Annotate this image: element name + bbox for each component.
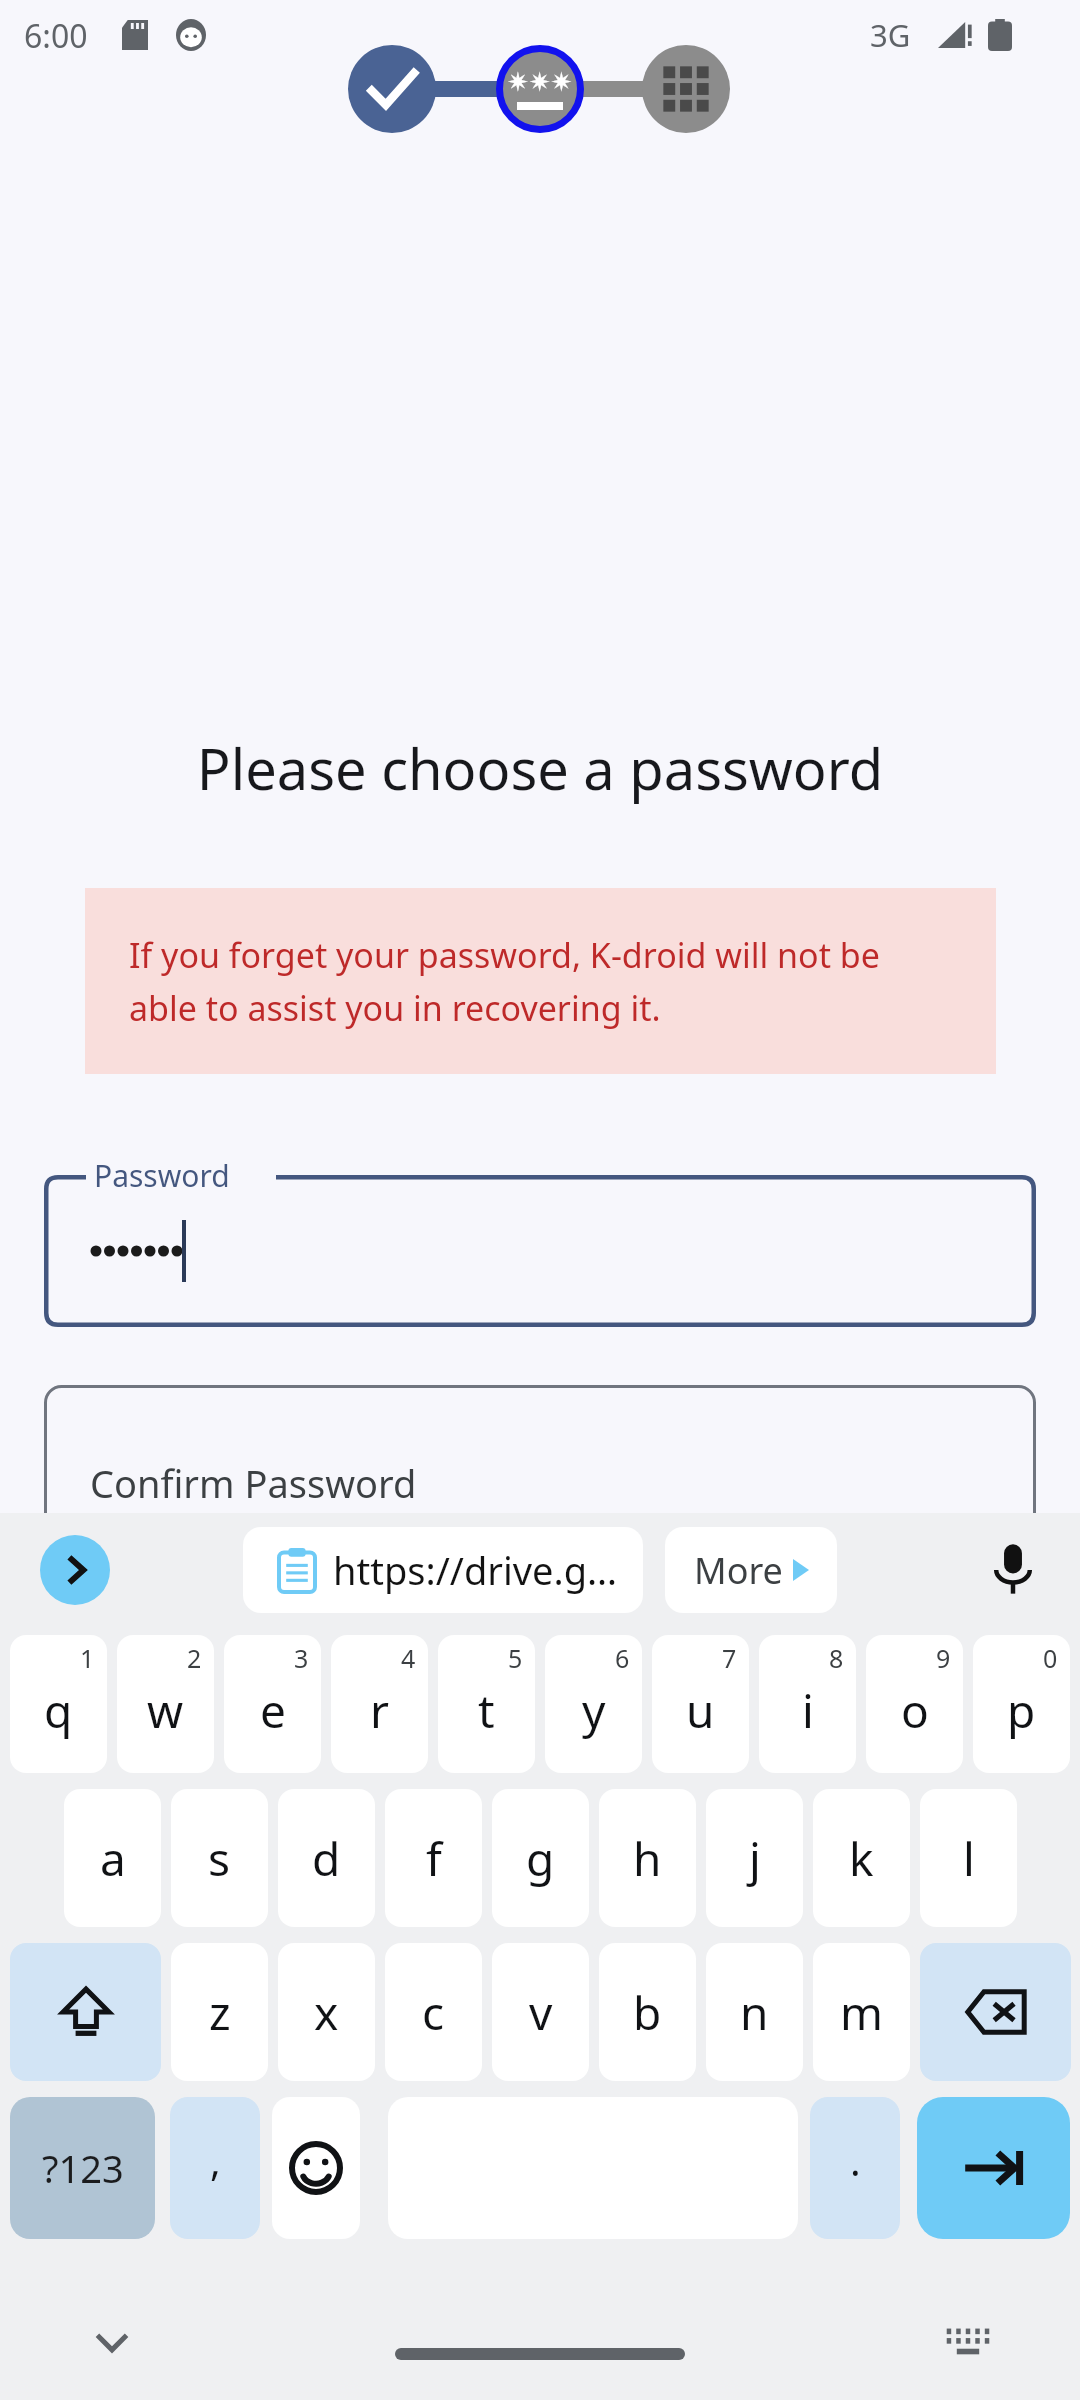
button[interactable]: Emoji [272, 2097, 360, 2239]
button[interactable]: c [385, 1943, 482, 2081]
staticText: 3G [870, 14, 911, 56]
button[interactable]: Hide keyboard [84, 2314, 140, 2370]
staticText: z [209, 1981, 231, 2044]
staticText: q [44, 1679, 73, 1742]
button[interactable]: f [385, 1789, 482, 1927]
button[interactable]: s [171, 1789, 268, 1927]
staticText: Confirm Password [90, 1457, 417, 1509]
button[interactable]: 1 [10, 1635, 107, 1773]
button[interactable]: 4 [331, 1635, 428, 1773]
button[interactable]: . [810, 2097, 900, 2239]
button[interactable]: 9 [866, 1635, 963, 1773]
staticText: m [840, 1981, 884, 2044]
button[interactable]: More [665, 1527, 837, 1613]
button[interactable]: Next [917, 2097, 1070, 2239]
staticText: g [526, 1827, 555, 1890]
staticText: o [901, 1679, 929, 1742]
staticText: k [849, 1827, 874, 1890]
button[interactable]: Voice input [985, 1541, 1041, 1597]
button[interactable]: Confirm Password [44, 1385, 1036, 1585]
button[interactable]: n [706, 1943, 803, 2081]
staticText: https://drive.g… [333, 1544, 618, 1596]
button[interactable]: g [492, 1789, 589, 1927]
button[interactable]: Step 2 password [496, 45, 584, 133]
button[interactable]: , [170, 2097, 260, 2239]
button[interactable]: 3 [224, 1635, 321, 1773]
button[interactable]: z [171, 1943, 268, 2081]
button[interactable]: ?123 [10, 2097, 155, 2239]
button[interactable]: If you forget your password, K-droid wil… [85, 888, 996, 1074]
button[interactable]: 2 [117, 1635, 214, 1773]
staticText: , [210, 2133, 221, 2187]
staticText: f [426, 1827, 442, 1890]
staticText: 3 [294, 1641, 309, 1675]
button[interactable]: Step 3 pattern [642, 45, 730, 133]
staticText: 8 [829, 1641, 844, 1675]
staticText: c [422, 1981, 445, 2044]
staticText: y [582, 1679, 606, 1742]
staticText: ✷✷✷ [507, 67, 573, 97]
button[interactable]: 5 [438, 1635, 535, 1773]
staticText: . [850, 2133, 861, 2187]
staticText: 6 [615, 1641, 630, 1675]
button[interactable]: Change keyboard [940, 2314, 996, 2370]
button[interactable]: Shift [10, 1943, 161, 2081]
button[interactable]: b [599, 1943, 696, 2081]
staticText: ?123 [42, 2142, 124, 2194]
button[interactable]: https://drive.g… [243, 1527, 643, 1613]
staticText: More [694, 1546, 783, 1595]
button[interactable]: Expand suggestions [40, 1535, 110, 1605]
staticText: 5 [508, 1641, 523, 1675]
staticText: 1 [80, 1641, 95, 1675]
staticText: u [686, 1679, 715, 1742]
staticText: n [740, 1981, 769, 2044]
button[interactable]: Step 1 completed [348, 45, 436, 133]
button[interactable]: Backspace [920, 1943, 1071, 2081]
staticText: 9 [936, 1641, 951, 1675]
staticText: l [963, 1827, 975, 1890]
staticText: s [208, 1827, 231, 1890]
button[interactable]: h [599, 1789, 696, 1927]
staticText: e [260, 1679, 286, 1742]
button[interactable]: a [64, 1789, 161, 1927]
button[interactable]: 6 [545, 1635, 642, 1773]
button[interactable]: d [278, 1789, 375, 1927]
staticText: 6:00 [24, 14, 88, 58]
button[interactable]: l [920, 1789, 1017, 1927]
staticText: a [100, 1827, 126, 1890]
button[interactable]: 8 [759, 1635, 856, 1773]
button[interactable]: x [278, 1943, 375, 2081]
staticText: Password [94, 1155, 230, 1196]
staticText: 7 [722, 1641, 737, 1675]
staticText: t [478, 1679, 495, 1742]
button[interactable]: 0 [973, 1635, 1070, 1773]
staticText: v [529, 1981, 553, 2044]
button[interactable]: 7 [652, 1635, 749, 1773]
staticText: 2 [187, 1641, 202, 1675]
button[interactable]: Password [44, 1175, 1036, 1327]
staticText: i [802, 1679, 814, 1742]
staticText: x [314, 1981, 339, 2044]
button[interactable]: j [706, 1789, 803, 1927]
button[interactable]: k [813, 1789, 910, 1927]
button[interactable]: m [813, 1943, 910, 2081]
staticText: If you forget your password, K-droid wil… [129, 932, 880, 1031]
staticText: Please choose a password [0, 730, 1080, 806]
staticText: w [147, 1679, 184, 1742]
staticText: d [312, 1827, 341, 1890]
staticText: h [633, 1827, 662, 1890]
staticText: 0 [1043, 1641, 1058, 1675]
staticText: 4 [401, 1641, 416, 1675]
staticText: p [1007, 1679, 1036, 1742]
button[interactable]: v [492, 1943, 589, 2081]
staticText: r [370, 1679, 389, 1742]
staticText: j [749, 1827, 761, 1890]
staticText: b [633, 1981, 662, 2044]
